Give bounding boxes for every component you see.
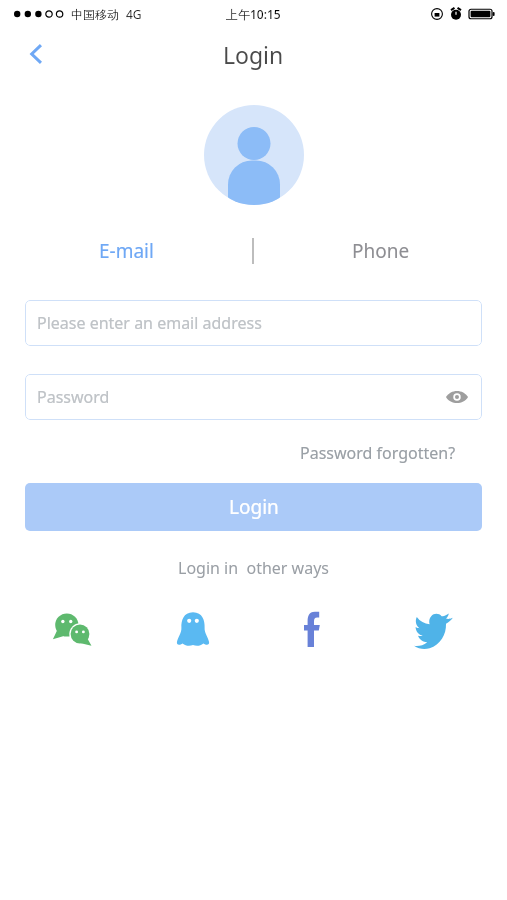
button[interactable]: Show password — [440, 380, 474, 414]
staticText: Login — [229, 494, 279, 520]
staticText: 上午10:15 — [226, 6, 281, 22]
staticText: Password — [37, 386, 110, 408]
staticText: Login — [223, 39, 284, 70]
button[interactable]: Please enter an email address — [25, 300, 482, 346]
staticText: E-mail — [99, 238, 154, 264]
button[interactable]: Twitter login — [407, 602, 461, 656]
button[interactable]: Phone — [254, 233, 507, 269]
button[interactable]: E-mail — [0, 233, 252, 269]
staticText: Login in other ways — [178, 557, 329, 579]
button[interactable]: Back — [14, 31, 60, 77]
button[interactable]: Password — [25, 374, 482, 420]
staticText: Please enter an email address — [37, 312, 262, 334]
button[interactable]: WeChat login — [46, 602, 100, 656]
staticText: 4G — [126, 6, 142, 22]
button[interactable]: Login — [25, 483, 482, 531]
button[interactable]: Password forgotten? — [300, 438, 468, 468]
button[interactable]: QQ login — [166, 602, 220, 656]
staticText: Phone — [352, 238, 410, 264]
staticText: 中国移动 — [71, 7, 119, 22]
button[interactable]: Facebook login — [287, 602, 341, 656]
staticText: Password forgotten? — [300, 442, 456, 464]
